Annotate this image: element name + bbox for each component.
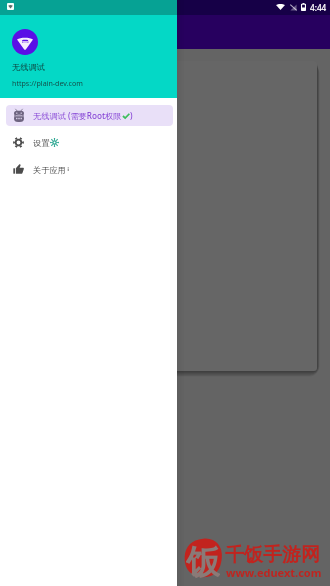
staticText: 4:44 bbox=[310, 2, 327, 13]
staticText: 打开开发者选项中的 USB 调试 bbox=[22, 86, 144, 98]
staticText: 设置 bbox=[33, 138, 50, 148]
staticText: https://plain-dev.com bbox=[12, 78, 83, 88]
button[interactable]: 关于应用 bbox=[6, 159, 173, 180]
button[interactable]: Open navigation drawer bbox=[5, 17, 35, 47]
button[interactable]: 无线调试 (需要Root权限 bbox=[6, 105, 173, 126]
staticText: 饭 bbox=[186, 541, 220, 582]
staticText: www.eduext.com bbox=[226, 565, 322, 580]
staticText: 关于应用 bbox=[33, 165, 66, 175]
staticText: 无线调试 bbox=[12, 62, 45, 72]
button[interactable]: Close navigation drawer bbox=[0, 0, 330, 586]
staticText: 千饭手游网 bbox=[225, 543, 320, 567]
staticText: 无线调试 (需要Root权限 bbox=[33, 110, 122, 121]
staticText: ) bbox=[130, 110, 133, 121]
button[interactable]: 设置 bbox=[6, 132, 173, 153]
staticText: 确保手机与电脑连接在同一网络下 bbox=[22, 69, 157, 80]
